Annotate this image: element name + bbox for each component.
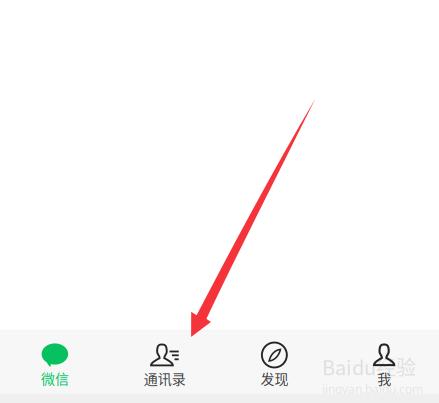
staticText: jingyan.baidu.com [322, 381, 423, 397]
button[interactable]: 通讯录 [110, 331, 220, 394]
staticText: 我 [377, 368, 391, 388]
button[interactable]: 微信 [0, 331, 110, 394]
staticText: 微信 [41, 368, 69, 388]
staticText: 发现 [260, 368, 288, 388]
staticText: Baidu经验 [322, 352, 416, 381]
button[interactable]: 我 [329, 331, 439, 394]
staticText: 通讯录 [144, 368, 186, 388]
button[interactable]: 发现 [219, 331, 329, 394]
